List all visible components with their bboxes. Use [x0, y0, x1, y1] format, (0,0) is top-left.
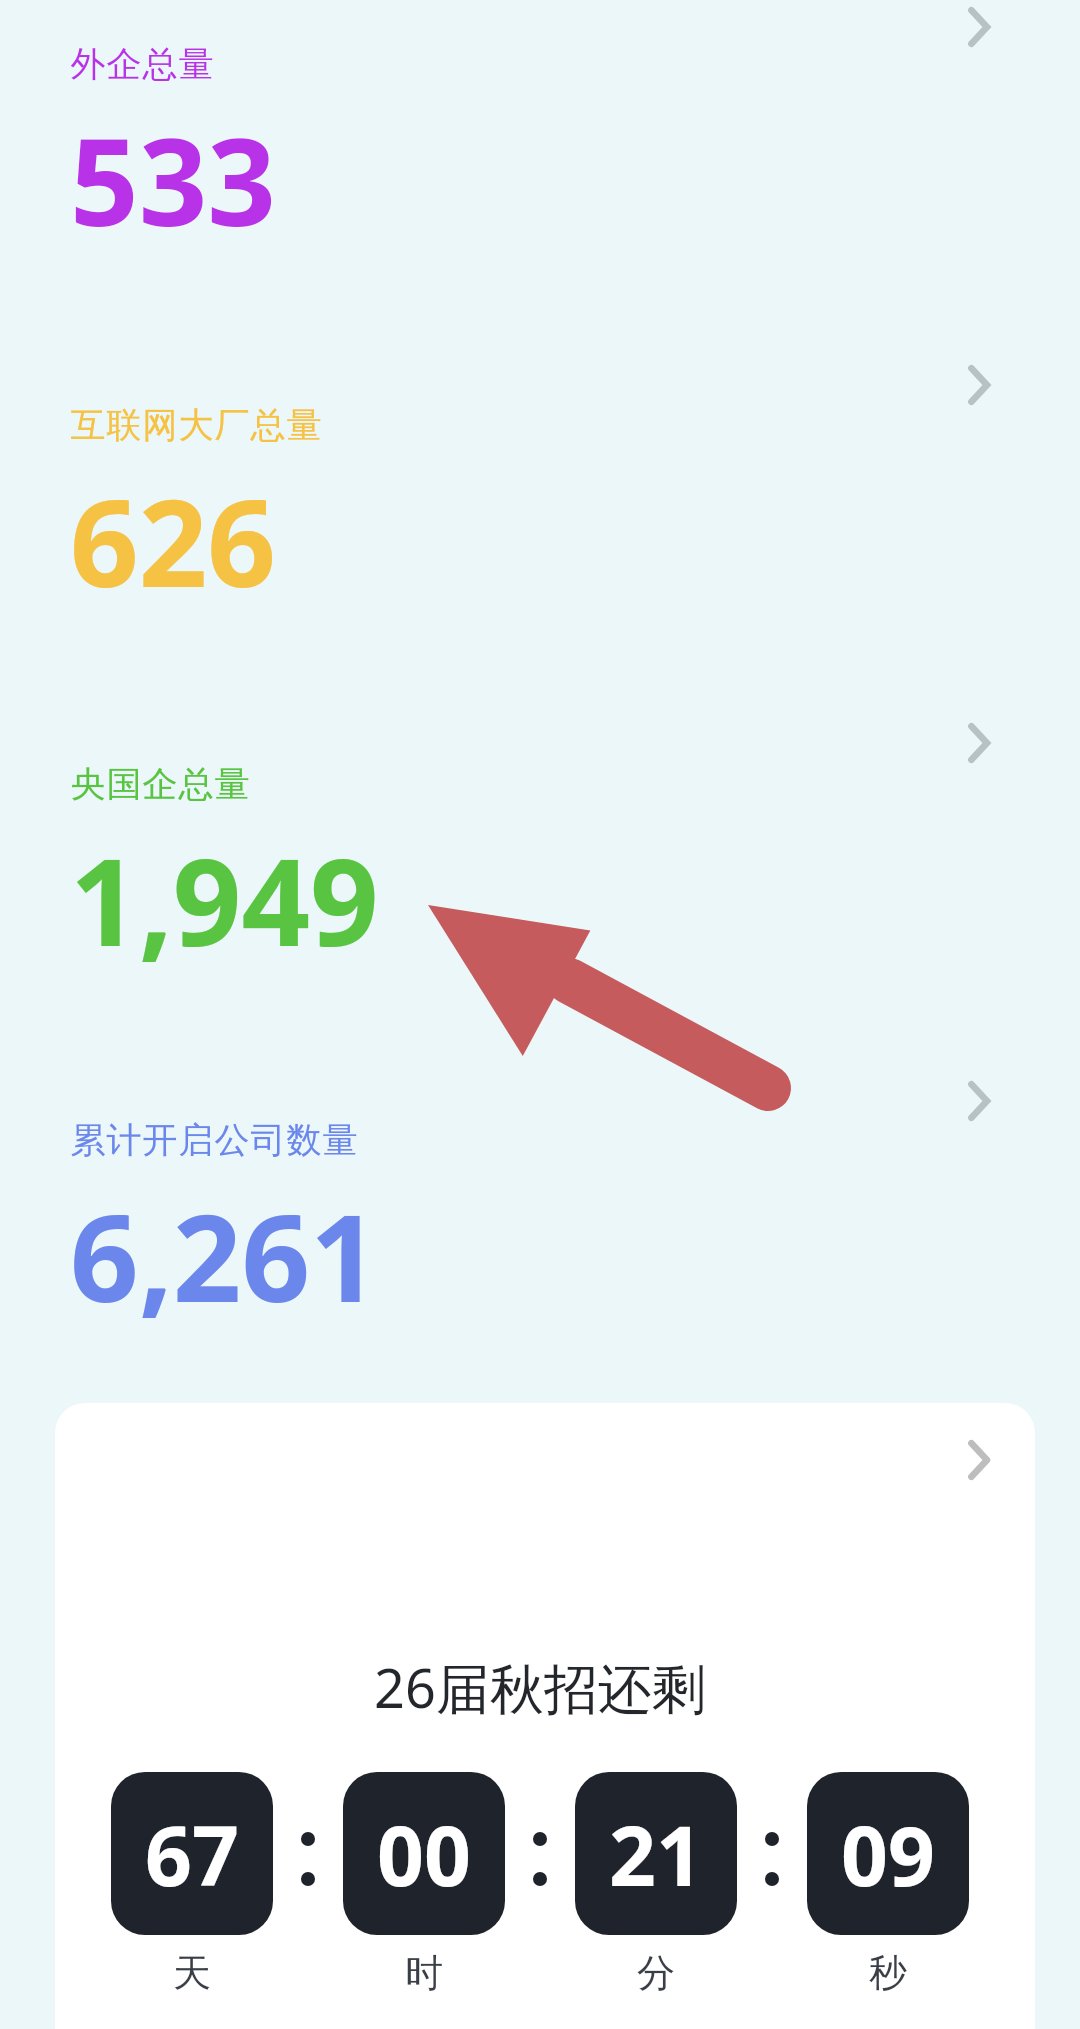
staticText: 67: [145, 1798, 239, 1910]
button[interactable]: 查看详情: [963, 723, 993, 763]
staticText: 21: [609, 1798, 703, 1910]
button[interactable]: 央国企总量: [70, 762, 379, 981]
staticText: 1,949: [70, 818, 379, 981]
staticText: 26届秋招还剩: [374, 1650, 706, 1724]
button[interactable]: 互联网大厂总量: [70, 403, 322, 622]
staticText: 秒: [869, 1949, 907, 1997]
staticText: 626: [70, 459, 276, 622]
staticText: 外企总量: [70, 42, 214, 86]
button[interactable]: [55, 1403, 1035, 2029]
button[interactable]: 查看详情: [963, 1081, 993, 1121]
staticText: 时: [405, 1949, 443, 1997]
button[interactable]: 查看详情: [963, 7, 993, 47]
button[interactable]: 21: [575, 1772, 737, 1935]
button[interactable]: 67: [111, 1772, 273, 1935]
staticText: 533: [70, 98, 276, 261]
button[interactable]: 00: [343, 1772, 505, 1935]
staticText: 00: [377, 1798, 471, 1910]
button[interactable]: 09: [807, 1772, 969, 1935]
staticText: 分: [637, 1949, 675, 1997]
staticText: 6,261: [70, 1174, 379, 1337]
staticText: 互联网大厂总量: [70, 403, 322, 447]
staticText: 累计开启公司数量: [70, 1118, 358, 1162]
button[interactable]: 查看详情: [963, 1440, 993, 1480]
button[interactable]: 查看详情: [963, 365, 993, 405]
staticText: 09: [841, 1798, 935, 1910]
button[interactable]: 外企总量: [70, 42, 276, 261]
staticText: 天: [173, 1949, 211, 1997]
button[interactable]: 累计开启公司数量: [70, 1118, 379, 1337]
staticText: 央国企总量: [70, 762, 250, 806]
